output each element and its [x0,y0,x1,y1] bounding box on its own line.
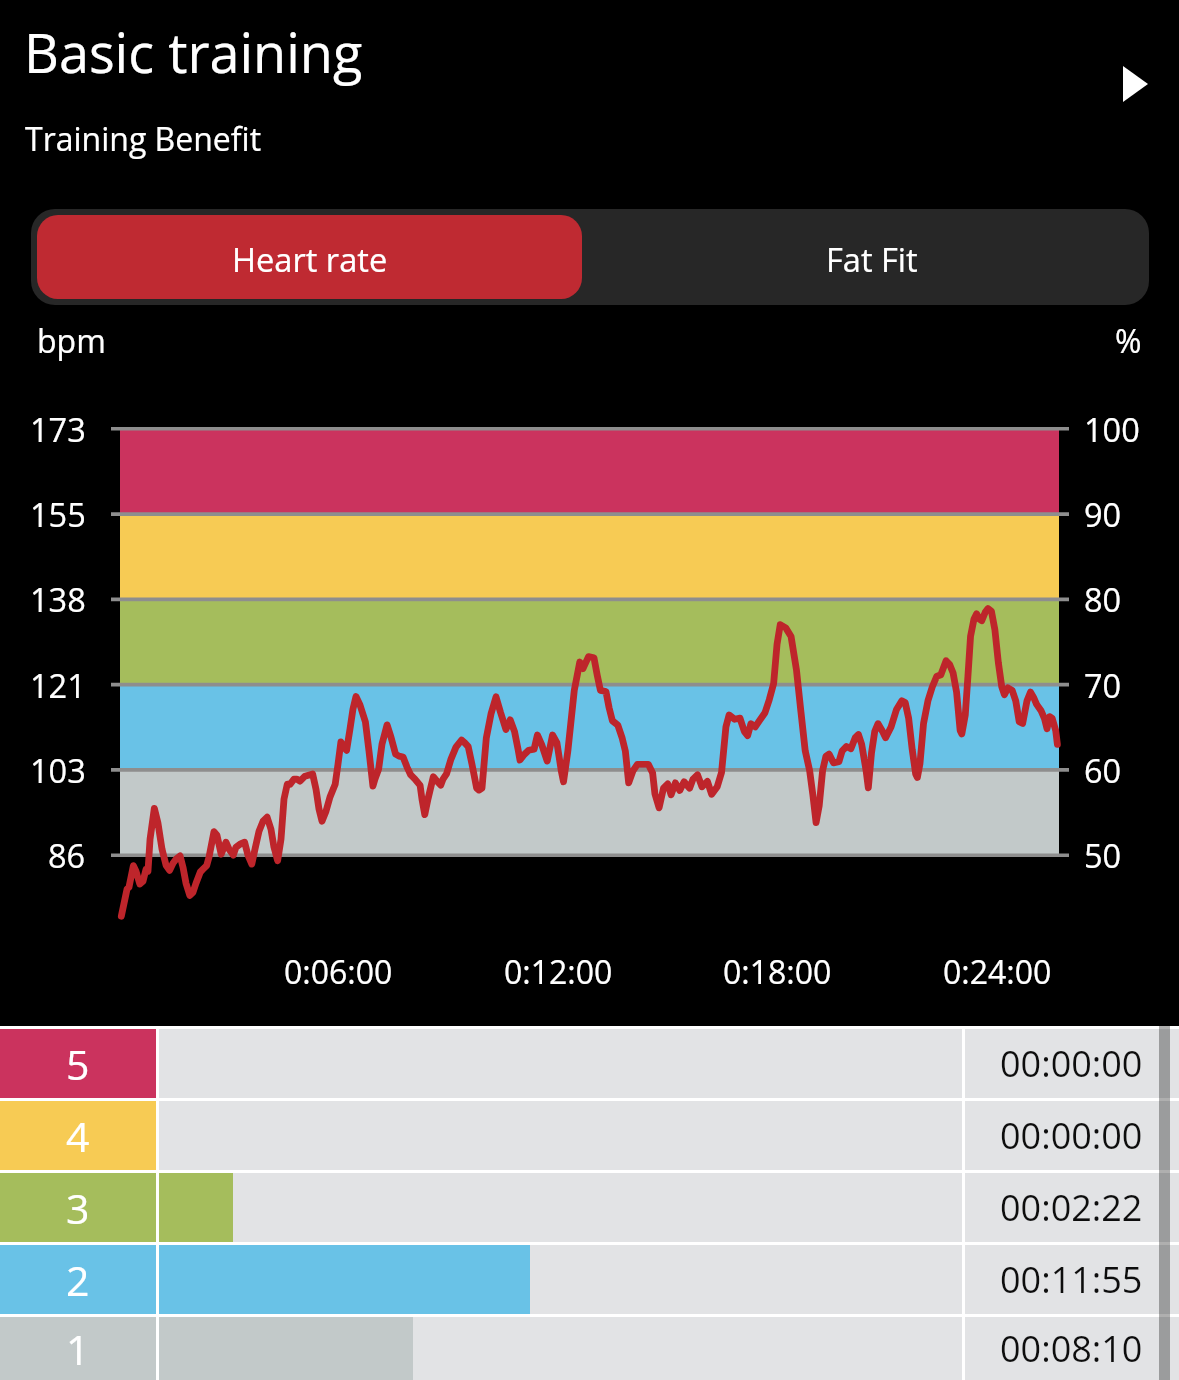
staticText: 155 [30,492,86,536]
button[interactable]: 1 [0,1317,1179,1380]
staticText: 100 [1084,407,1140,451]
staticText: bpm [37,319,106,363]
staticText: Heart rate [232,237,388,281]
staticText: Basic training [24,15,363,89]
staticText: 00:08:10 [1000,1324,1143,1373]
staticText: 50 [1084,833,1122,877]
staticText: 0:24:00 [943,950,1052,994]
button[interactable]: 2 [0,1245,1179,1314]
staticText: 70 [1084,663,1122,707]
staticText: 00:11:55 [1000,1255,1143,1304]
staticText: 0:12:00 [504,950,613,994]
button[interactable]: Fat Fit [582,215,1143,299]
staticText: 138 [30,577,86,621]
staticText: 60 [1084,748,1122,792]
staticText: % [1115,319,1142,363]
staticText: 00:00:00 [1000,1111,1143,1160]
staticText: Fat Fit [826,237,918,281]
staticText: 103 [30,748,86,792]
staticText: Training Benefit [25,117,262,161]
staticText: 121 [30,663,86,707]
staticText: 90 [1084,492,1122,536]
staticText: 0:18:00 [723,950,832,994]
button[interactable]: Heart rate [37,215,582,299]
staticText: 173 [30,407,86,451]
button[interactable]: 4 [0,1101,1179,1170]
staticText: 0:06:00 [284,950,393,994]
button[interactable]: 3 [0,1173,1179,1242]
staticText: 3 [66,1180,90,1236]
staticText: 00:02:22 [1000,1183,1143,1232]
staticText: 1 [66,1321,90,1377]
staticText: 2 [66,1252,90,1308]
staticText: 5 [66,1036,90,1092]
button[interactable]: 5 [0,1029,1179,1098]
staticText: 00:00:00 [1000,1039,1143,1088]
staticText: 4 [66,1108,90,1164]
button[interactable]: Play workout [1100,56,1170,112]
staticText: 80 [1084,577,1122,621]
staticText: 86 [48,833,86,877]
